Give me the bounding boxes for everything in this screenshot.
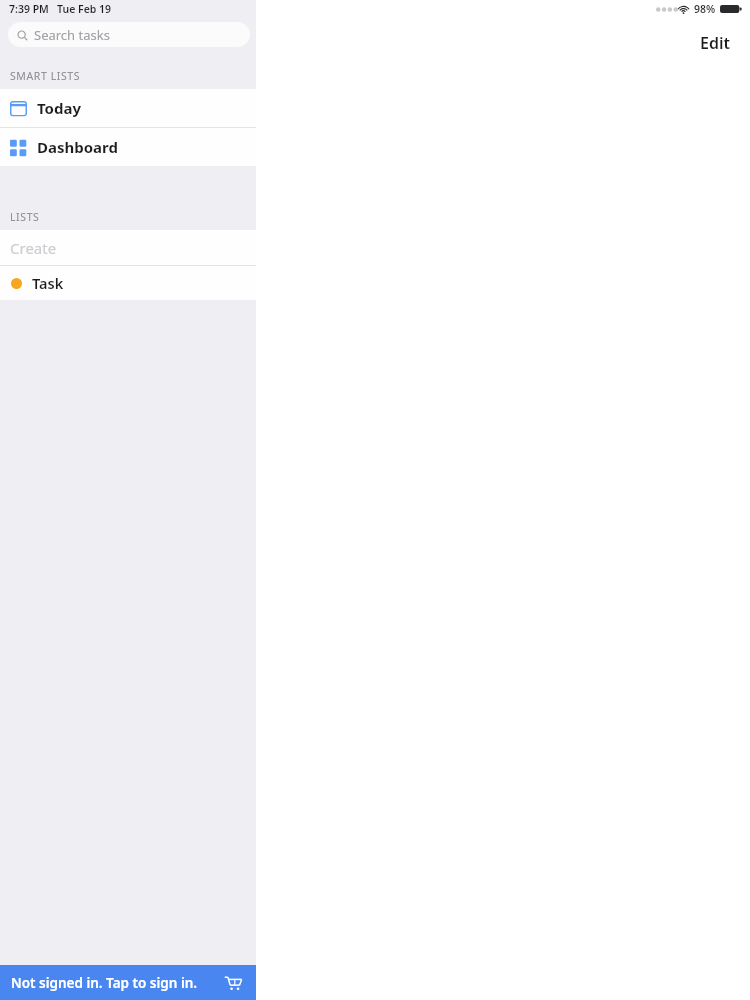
staticText: Task (32, 273, 64, 293)
button[interactable]: Dashboard (0, 128, 256, 166)
staticText: Search tasks (34, 26, 110, 44)
staticText: 98% (694, 2, 716, 16)
staticText: LISTS (10, 210, 40, 224)
staticText: 7:39 PM (9, 2, 49, 16)
button[interactable]: Create (0, 230, 256, 265)
staticText: Tue Feb 19 (57, 2, 112, 16)
staticText: Not signed in. Tap to sign in. (11, 974, 198, 992)
button[interactable]: Search tasks (8, 22, 250, 47)
button[interactable]: Store (221, 971, 245, 995)
staticText: SMART LISTS (10, 69, 81, 83)
staticText: Dashboard (37, 137, 118, 157)
staticText: Today (37, 98, 82, 118)
button[interactable]: Edit (694, 28, 736, 58)
button[interactable]: Today (0, 89, 256, 127)
staticText: Create (10, 238, 57, 258)
staticText: Edit (700, 32, 730, 54)
button[interactable]: Task (0, 266, 256, 300)
button[interactable]: Not signed in. Tap to sign in. (0, 965, 256, 1000)
